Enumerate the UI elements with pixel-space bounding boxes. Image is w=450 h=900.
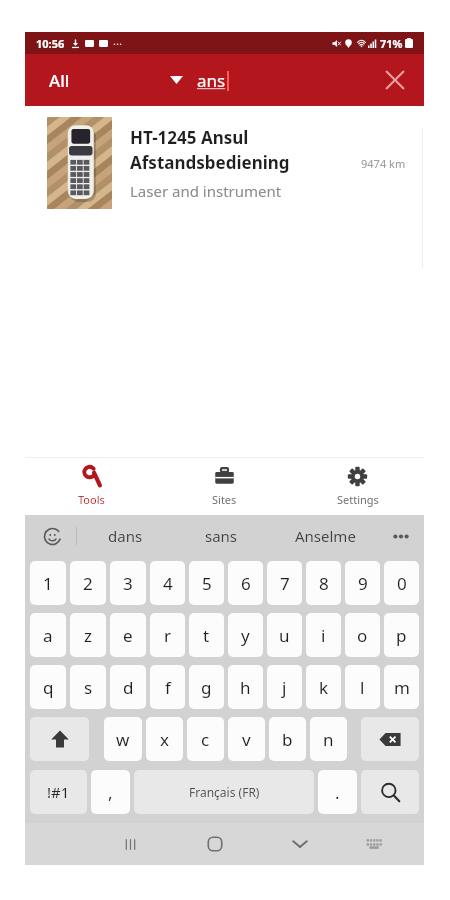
staticText: . [335,781,340,804]
button[interactable]: Keyboard layout [342,823,406,865]
staticText: q [43,676,54,699]
button[interactable]: y [228,613,263,657]
button[interactable]: 3 [110,561,146,605]
button[interactable]: !#1 [30,770,87,814]
button[interactable]: 6 [228,561,263,605]
button[interactable]: 5 [189,561,224,605]
staticText: o [357,624,368,647]
button[interactable]: g [189,665,224,709]
button[interactable]: i [306,613,341,657]
staticText: h [240,676,251,699]
button[interactable]: Hide keyboard [257,823,342,865]
button[interactable]: Backspace [361,717,419,761]
staticText: Laser and instrument [130,181,282,201]
staticText: , [108,781,113,804]
staticText: b [282,728,293,751]
staticText: ans [197,69,226,92]
button[interactable]: 2 [70,561,106,605]
button[interactable]: More suggestions [381,515,421,557]
staticText: p [396,624,407,647]
button[interactable]: a [30,613,66,657]
staticText: 0 [397,572,407,595]
button[interactable]: o [345,613,380,657]
button[interactable]: All [25,54,197,106]
button[interactable]: t [189,613,224,657]
button[interactable]: Recent apps [88,823,172,865]
staticText: v [242,728,251,751]
button[interactable]: f [150,665,185,709]
staticText: y [241,624,250,647]
button[interactable]: ans [197,54,366,106]
button[interactable]: Home [172,823,257,865]
button[interactable]: n [310,717,347,761]
button[interactable]: w [104,717,142,761]
button[interactable]: 0 [384,561,419,605]
staticText: 3 [123,572,133,595]
button[interactable]: h [228,665,263,709]
button[interactable]: j [267,665,302,709]
staticText: Anselme [295,526,356,546]
button[interactable]: z [70,613,106,657]
staticText: 10:56 [36,36,65,51]
button[interactable]: c [187,717,224,761]
button[interactable]: Search [361,770,419,814]
button[interactable]: l [345,665,380,709]
staticText: u [279,624,290,647]
button[interactable]: x [146,717,183,761]
button[interactable]: 9 [345,561,380,605]
staticText: 71% [380,36,403,51]
staticText: k [319,676,329,699]
staticText: All [49,69,70,92]
button[interactable]: m [384,665,419,709]
staticText: a [43,624,53,647]
staticText: 5 [202,572,212,595]
button[interactable]: s [70,665,106,709]
button[interactable]: Emoji [28,515,76,557]
staticText: 4 [163,572,173,595]
button[interactable]: 4 [150,561,185,605]
staticText: sans [205,526,238,546]
button[interactable]: e [110,613,146,657]
staticText: r [164,624,172,647]
button[interactable]: Sites [158,458,291,515]
staticText: !#1 [47,782,70,802]
staticText: dans [108,526,143,546]
button[interactable]: Clear search [366,54,424,106]
button[interactable]: u [267,613,302,657]
staticText: Settings [337,492,379,507]
button[interactable]: 1 [30,561,66,605]
staticText: t [203,624,210,647]
button[interactable]: q [30,665,66,709]
button[interactable]: HT-1245 Ansul [29,110,420,216]
button[interactable]: Anselme [270,515,381,557]
staticText: i [321,624,326,647]
button[interactable]: Shift [30,717,89,761]
button[interactable]: k [306,665,341,709]
button[interactable]: b [269,717,306,761]
button[interactable]: Settings [291,458,424,515]
staticText: Français (FR) [189,784,260,800]
button[interactable]: . [318,770,357,814]
staticText: Sites [212,492,237,507]
staticText: w [116,728,130,751]
staticText: 9474 km [361,156,406,171]
staticText: 8 [319,572,329,595]
button[interactable]: sans [173,515,270,557]
staticText: f [165,676,171,699]
staticText: 2 [83,572,93,595]
button[interactable]: dans [77,515,173,557]
button[interactable]: v [228,717,265,761]
button[interactable]: , [91,770,130,814]
button[interactable]: p [384,613,419,657]
staticText: 6 [241,572,251,595]
button[interactable]: r [150,613,185,657]
button[interactable]: 7 [267,561,302,605]
staticText: n [323,728,334,751]
button[interactable]: Tools [25,458,158,515]
button[interactable]: Français (FR) [134,770,314,814]
button[interactable]: 8 [306,561,341,605]
button[interactable]: d [110,665,146,709]
staticText: e [123,624,133,647]
staticText: z [84,624,92,647]
staticText: j [282,676,287,699]
